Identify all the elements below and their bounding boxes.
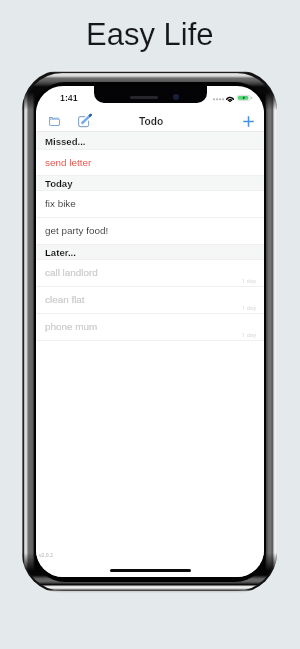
staticText: Later... — [45, 247, 76, 258]
staticText: clean flat — [45, 294, 85, 305]
staticText: send letter — [45, 157, 92, 168]
staticText: 1:41 — [60, 93, 78, 103]
staticText: 1 day — [242, 277, 257, 285]
staticText: Todo — [139, 116, 164, 127]
button[interactable]: Folders — [42, 110, 66, 132]
staticText: Missed... — [45, 136, 86, 147]
button[interactable]: Add task — [236, 110, 260, 132]
staticText: fix bike — [45, 198, 76, 209]
staticText: 1 day — [242, 331, 257, 339]
button[interactable]: fix bike — [36, 191, 264, 218]
button[interactable]: send letter — [36, 150, 264, 176]
staticText: Today — [45, 178, 73, 189]
staticText: call landlord — [45, 267, 98, 278]
button[interactable]: New note — [72, 110, 96, 132]
button[interactable]: get party food! — [36, 218, 264, 245]
button[interactable]: phone mum — [36, 314, 264, 341]
staticText: Easy Life — [86, 17, 214, 52]
staticText: v2.0.2 — [39, 552, 53, 559]
button[interactable]: clean flat — [36, 287, 264, 314]
staticText: get party food! — [45, 225, 109, 236]
staticText: 1 day — [242, 304, 257, 312]
button[interactable]: call landlord — [36, 260, 264, 287]
staticText: phone mum — [45, 321, 98, 332]
